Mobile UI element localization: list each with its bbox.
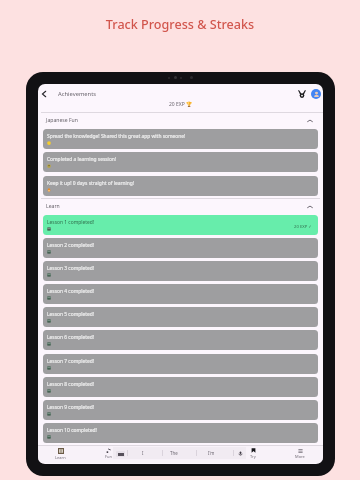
staticText: Lesson 4 completed!: [47, 288, 95, 295]
button[interactable]: Account: [311, 89, 321, 99]
staticText: Lesson 3 completed!: [47, 265, 95, 272]
staticText: Lesson 9 completed!: [47, 404, 95, 411]
button[interactable]: Lesson 4 completed!: [43, 284, 318, 304]
staticText: 20 EXP 🏆: [169, 101, 193, 108]
button[interactable]: Lesson 8 completed!: [43, 377, 318, 397]
staticText: Learn: [55, 455, 66, 460]
button[interactable]: I: [135, 447, 151, 459]
button[interactable]: Fun: [98, 448, 119, 459]
button[interactable]: Voice input: [237, 450, 243, 456]
button[interactable]: Learn: [50, 448, 71, 460]
staticText: Lesson 7 completed!: [47, 358, 95, 365]
button[interactable]: Completed a learning session!: [43, 152, 318, 172]
button[interactable]: Lesson 5 completed!: [43, 307, 318, 327]
button[interactable]: The: [166, 447, 182, 459]
button[interactable]: Spread the knowledge! Shared this great …: [43, 129, 318, 149]
button[interactable]: Switch keyboard: [116, 451, 125, 457]
button[interactable]: Lesson 10 completed!: [43, 423, 318, 443]
staticText: Lesson 6 completed!: [47, 334, 95, 341]
staticText: Completed a learning session!: [47, 156, 117, 163]
staticText: Lesson 5 completed!: [47, 311, 95, 318]
staticText: Track Progress & Streaks: [0, 16, 360, 33]
staticText: I'm: [208, 450, 215, 456]
button[interactable]: Learn: [38, 198, 323, 215]
staticText: Lesson 8 completed!: [47, 381, 95, 388]
staticText: Lesson 1 completed!: [47, 219, 95, 226]
staticText: Japanese Fun: [46, 117, 78, 124]
button[interactable]: Back: [38, 88, 50, 100]
staticText: Learn: [46, 203, 60, 210]
staticText: I: [142, 450, 144, 456]
staticText: More: [295, 454, 305, 459]
staticText: Lesson 10 completed!: [47, 427, 97, 434]
staticText: Try: [250, 454, 256, 459]
staticText: Achievements: [58, 90, 97, 98]
button[interactable]: Try: [243, 448, 263, 459]
button[interactable]: More: [290, 448, 310, 459]
button[interactable]: Lesson 9 completed!: [43, 400, 318, 420]
staticText: Lesson 2 completed!: [47, 242, 95, 249]
staticText: Fun: [105, 454, 113, 459]
staticText: Keep it up! 0 days straight of learning!: [47, 180, 135, 187]
button[interactable]: Medals: [295, 87, 308, 100]
button[interactable]: Lesson 3 completed!: [43, 261, 318, 281]
button[interactable]: Lesson 1 completed!: [43, 215, 318, 235]
button[interactable]: Lesson 2 completed!: [43, 238, 318, 258]
staticText: Spread the knowledge! Shared this great …: [47, 133, 186, 140]
button[interactable]: Keep it up! 0 days straight of learning!: [43, 176, 318, 196]
button[interactable]: I'm: [203, 447, 219, 459]
button[interactable]: Lesson 6 completed!: [43, 330, 318, 350]
button[interactable]: Lesson 7 completed!: [43, 354, 318, 374]
staticText: 20 EXP ✓: [294, 224, 312, 230]
staticText: The: [170, 450, 178, 456]
button[interactable]: Japanese Fun: [38, 112, 323, 129]
